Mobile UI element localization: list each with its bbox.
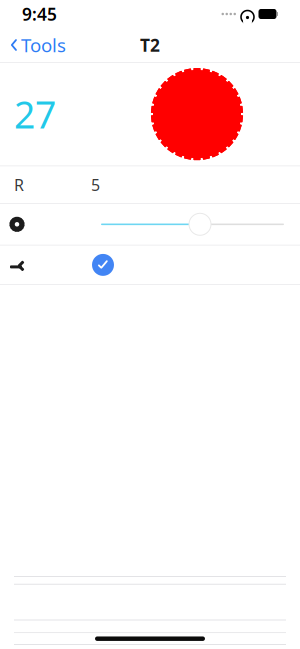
staticText: R xyxy=(14,174,24,195)
staticText: T2 xyxy=(140,33,160,56)
button[interactable]: Confirm xyxy=(88,250,118,280)
staticText: Tools xyxy=(21,33,66,57)
staticText: 9:45 xyxy=(22,2,57,25)
staticText: 5 xyxy=(91,174,100,195)
button[interactable]: Tools xyxy=(0,27,66,63)
staticText: 27 xyxy=(14,89,56,139)
